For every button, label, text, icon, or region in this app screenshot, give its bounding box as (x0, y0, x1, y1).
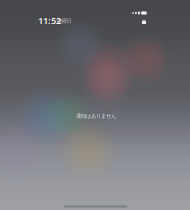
staticText: 通知はありません (76, 113, 116, 119)
staticText: 金曜日 (56, 18, 71, 24)
staticText: 11:52 (38, 14, 61, 27)
